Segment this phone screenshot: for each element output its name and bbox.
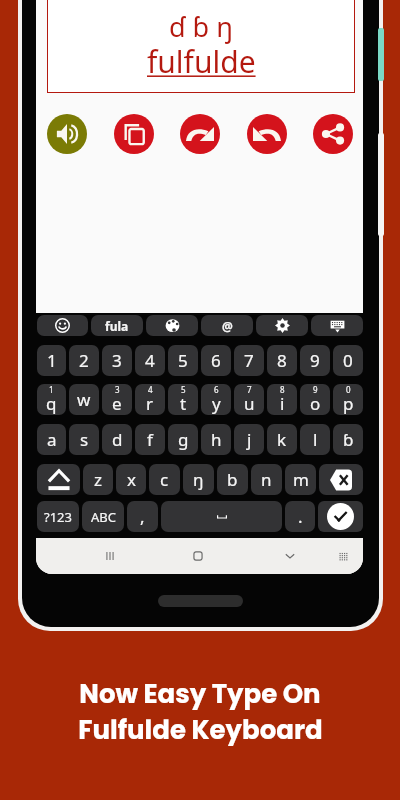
button[interactable]: 6 xyxy=(201,345,231,376)
staticText: f xyxy=(147,428,153,451)
staticText: . xyxy=(298,505,303,528)
staticText: 7 xyxy=(244,349,254,372)
button[interactable]: 7 xyxy=(234,345,264,376)
staticText: t xyxy=(180,392,187,415)
staticText: 6 xyxy=(214,384,219,395)
button[interactable]: a xyxy=(37,424,66,455)
button[interactable]: 0 xyxy=(333,384,363,415)
staticText: g xyxy=(178,428,189,451)
staticText: 3 xyxy=(112,349,122,372)
button[interactable]: 4 xyxy=(135,384,165,415)
staticText: 1 xyxy=(47,349,57,372)
button[interactable]: fula xyxy=(91,315,143,336)
button[interactable]: x xyxy=(116,464,146,495)
staticText: Fulfulde Keyboard xyxy=(78,712,323,748)
button[interactable]: Recents xyxy=(96,542,124,570)
button[interactable]: z xyxy=(83,464,113,495)
button[interactable]: Speak xyxy=(47,114,87,154)
staticText: 1 xyxy=(49,384,54,395)
button[interactable]: Keyboard layout xyxy=(329,542,357,570)
button[interactable]: 0 xyxy=(333,345,363,376)
button[interactable]: 9 xyxy=(300,345,330,376)
staticText: z xyxy=(94,468,102,491)
staticText: j xyxy=(247,428,252,451)
staticText: 8 xyxy=(277,349,287,372)
staticText: ɗ ɓ ŋ xyxy=(169,8,233,45)
staticText: @ xyxy=(222,318,233,334)
button[interactable]: 8 xyxy=(267,384,297,415)
staticText: o xyxy=(310,392,321,415)
button[interactable]: 5 xyxy=(168,345,198,376)
button[interactable]: n xyxy=(251,464,282,495)
button[interactable]: w xyxy=(69,384,99,415)
button[interactable]: ?123 xyxy=(37,501,79,532)
button[interactable]: Hide keyboard xyxy=(311,315,363,336)
staticText: 0 xyxy=(346,384,351,395)
button[interactable]: ŋ xyxy=(183,464,214,495)
staticText: 5 xyxy=(178,349,188,372)
button[interactable]: @ xyxy=(201,315,253,336)
button[interactable]: ABC xyxy=(82,501,124,532)
staticText: e xyxy=(112,392,122,415)
button[interactable]: Redo xyxy=(180,114,220,154)
button[interactable]: d xyxy=(102,424,132,455)
staticText: 7 xyxy=(247,384,252,395)
staticText: q xyxy=(46,392,57,415)
button[interactable]: f xyxy=(135,424,165,455)
button[interactable]: 2 xyxy=(69,345,99,376)
button[interactable]: m xyxy=(285,464,316,495)
staticText: 5 xyxy=(181,384,186,395)
button[interactable]: Settings xyxy=(256,315,308,336)
button[interactable]: Share xyxy=(313,114,353,154)
staticText: d xyxy=(112,428,123,451)
button[interactable]: Space xyxy=(161,501,282,532)
staticText: h xyxy=(211,428,222,451)
button[interactable]: 6 xyxy=(201,384,231,415)
button[interactable]: b xyxy=(217,464,248,495)
button[interactable]: h xyxy=(201,424,231,455)
button[interactable]: Backspace xyxy=(319,464,363,495)
staticText: r xyxy=(146,392,154,415)
button[interactable]: 1 xyxy=(37,384,66,415)
button[interactable]: g xyxy=(168,424,198,455)
staticText: a xyxy=(47,428,57,451)
button[interactable]: Home xyxy=(184,542,212,570)
button[interactable]: 1 xyxy=(37,345,66,376)
staticText: s xyxy=(80,428,89,451)
button[interactable]: 3 xyxy=(102,345,132,376)
button[interactable]: l xyxy=(300,424,330,455)
button[interactable]: Enter xyxy=(318,501,363,532)
staticText: 2 xyxy=(79,349,89,372)
button[interactable]: c xyxy=(149,464,180,495)
staticText: fula xyxy=(105,318,129,334)
button[interactable]: ɓ xyxy=(333,424,363,455)
staticText: 9 xyxy=(310,349,320,372)
button[interactable]: 5 xyxy=(168,384,198,415)
staticText: 8 xyxy=(280,384,285,395)
staticText: m xyxy=(293,468,309,491)
staticText: c xyxy=(160,468,169,491)
staticText: , xyxy=(140,505,145,528)
button[interactable]: Copy xyxy=(114,114,154,154)
button[interactable]: . xyxy=(285,501,315,532)
button[interactable]: Emoji xyxy=(37,315,88,336)
staticText: Now Easy Type On xyxy=(79,676,321,712)
button[interactable]: 3 xyxy=(102,384,132,415)
button[interactable]: , xyxy=(127,501,158,532)
button[interactable]: 8 xyxy=(267,345,297,376)
staticText: p xyxy=(343,392,354,415)
button[interactable]: Theme xyxy=(146,315,198,336)
staticText: ABC xyxy=(91,508,116,526)
staticText: ɓ xyxy=(343,428,354,451)
button[interactable]: s xyxy=(69,424,99,455)
button[interactable]: 7 xyxy=(234,384,264,415)
button[interactable]: k xyxy=(267,424,297,455)
button[interactable]: Shift xyxy=(37,464,80,495)
button[interactable]: Undo xyxy=(247,114,287,154)
staticText: ŋ xyxy=(193,468,204,491)
button[interactable]: 4 xyxy=(135,345,165,376)
button[interactable]: j xyxy=(234,424,264,455)
button[interactable]: 9 xyxy=(300,384,330,415)
button[interactable]: Back xyxy=(276,542,304,570)
staticText: 9 xyxy=(313,384,318,395)
